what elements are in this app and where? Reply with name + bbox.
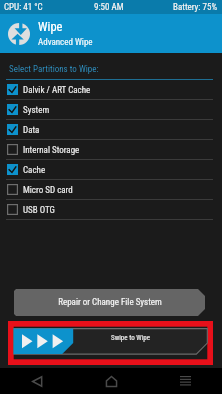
staticText: Data	[23, 125, 40, 136]
staticText: USB OTG	[23, 205, 55, 216]
staticText: Advanced Wipe	[38, 37, 93, 48]
staticText: System	[23, 105, 50, 116]
button[interactable]: Micro SD card	[0, 180, 222, 199]
staticText: CPU: 41 °C	[4, 2, 43, 13]
button[interactable]: Home	[74, 368, 148, 394]
button[interactable]: Data	[0, 120, 222, 139]
staticText: Swipe to Wipe	[111, 334, 150, 342]
button[interactable]: Cache	[0, 160, 222, 179]
staticText: Wipe	[38, 19, 63, 34]
button[interactable]: Swipe to Wipe	[8, 321, 213, 365]
button[interactable]: USB OTG	[0, 200, 222, 219]
staticText: Dalvik / ART Cache	[23, 85, 91, 96]
button[interactable]: Recent apps	[148, 368, 222, 394]
staticText: Cache	[23, 165, 46, 176]
button[interactable]: Internal Storage	[0, 140, 222, 159]
staticText: Battery: 75%	[173, 2, 218, 13]
button[interactable]: Repair or Change File System	[14, 289, 205, 316]
staticText: Micro SD card	[23, 185, 73, 196]
staticText: 9:50 AM	[94, 2, 124, 13]
button[interactable]: Wipe	[0, 14, 222, 53]
staticText: Select Partitions to Wipe:	[9, 64, 99, 75]
staticText: Internal Storage	[23, 145, 80, 156]
button[interactable]: Dalvik / ART Cache	[0, 80, 222, 99]
staticText: Repair or Change File System	[58, 297, 162, 308]
button[interactable]: System	[0, 100, 222, 119]
button[interactable]: Back	[0, 368, 74, 394]
